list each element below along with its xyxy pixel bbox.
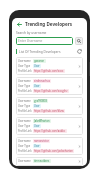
staticText: User Type (18, 84, 31, 88)
staticText: User (34, 124, 40, 128)
staticText: Profile Link (18, 149, 32, 153)
staticText: User (34, 64, 40, 68)
button[interactable]: Username (16, 157, 83, 166)
button[interactable]: Username (16, 117, 83, 135)
staticText: https://github.com/xxxx (34, 69, 64, 73)
staticText: Username (18, 99, 31, 103)
button[interactable]: Refresh (76, 48, 83, 55)
staticText: JakeWharton (34, 119, 50, 123)
staticText: Trending Developers (25, 21, 73, 27)
staticText: yyx990803 (34, 99, 47, 103)
button[interactable]: Enter Username (16, 37, 73, 45)
staticText: User (34, 144, 40, 148)
staticText: Enter Username (18, 39, 43, 43)
staticText: Profile Link (18, 129, 32, 133)
staticText: User Type (18, 64, 31, 68)
staticText: User (34, 104, 40, 108)
staticText: gaearon (34, 59, 45, 63)
staticText: https://github.com/kkzw (34, 109, 64, 113)
staticText: timneutkens (34, 159, 50, 163)
button[interactable]: Username (16, 97, 83, 115)
staticText: Username (18, 119, 31, 123)
staticText: Username (18, 139, 31, 143)
staticText: Username (18, 79, 31, 83)
button[interactable]: Back (15, 20, 23, 28)
button[interactable]: Search (75, 37, 83, 45)
staticText: Profile Link (18, 89, 32, 93)
staticText: https://github.com/jackwharton (34, 149, 73, 153)
button[interactable]: Username (16, 77, 83, 95)
button[interactable]: Username (16, 57, 83, 75)
staticText: Username (18, 159, 31, 163)
staticText: ramonvictor (34, 139, 49, 143)
staticText: User (34, 84, 40, 88)
button[interactable]: Username (16, 137, 83, 155)
staticText: User Type (18, 144, 31, 148)
staticText: https://github.com/xxxyyhz (34, 89, 68, 93)
staticText: Search by username (16, 31, 47, 35)
staticText: User Type (18, 124, 31, 128)
staticText: Username (18, 59, 31, 63)
staticText: Profile Link (18, 69, 32, 73)
staticText: https://github.com/aabbc (34, 129, 66, 133)
staticText: User Type (18, 104, 31, 108)
staticText: Profile Link (18, 109, 32, 113)
staticText: List Of Trending Developers (19, 50, 76, 54)
staticText: sindresorhus (34, 79, 50, 83)
